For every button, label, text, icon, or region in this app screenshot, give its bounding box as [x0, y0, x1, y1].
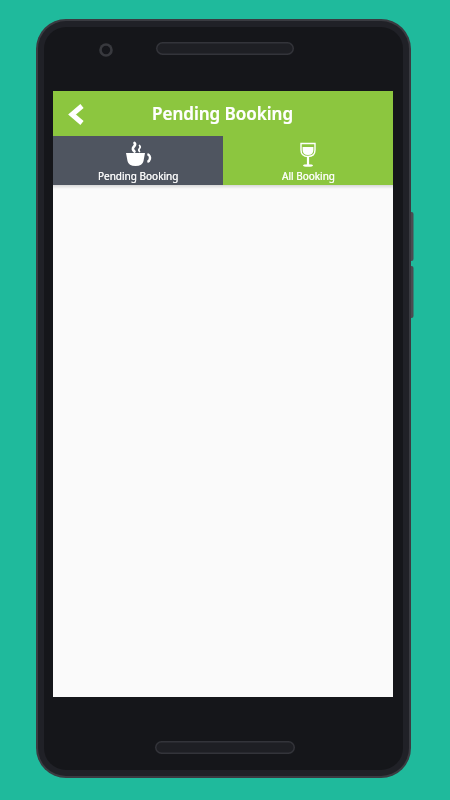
- button[interactable]: [59, 97, 93, 131]
- button[interactable]: Pending Booking: [53, 136, 223, 185]
- staticText: Pending Booking: [152, 102, 294, 125]
- staticText: Pending Booking: [98, 169, 179, 183]
- staticText: All Booking: [282, 169, 335, 183]
- button[interactable]: All Booking: [223, 136, 393, 185]
